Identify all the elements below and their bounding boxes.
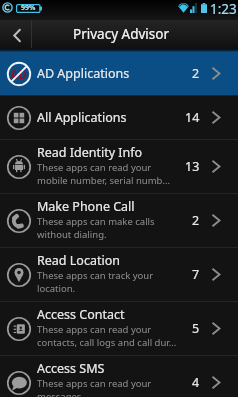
staticText: 2 xyxy=(192,212,200,229)
staticText: 4 xyxy=(192,374,200,391)
staticText: These apps can track your xyxy=(37,269,154,282)
button[interactable]: Access Contact xyxy=(0,302,238,355)
button[interactable]: Read Location xyxy=(0,248,238,301)
staticText: 5 xyxy=(192,320,200,337)
staticText: 1:23 xyxy=(210,0,237,18)
staticText: location. xyxy=(37,282,76,295)
staticText: Access SMS xyxy=(37,360,105,377)
staticText: All Applications xyxy=(37,109,127,126)
staticText: These apps can read your xyxy=(37,323,152,336)
staticText: These apps can read your xyxy=(37,377,152,390)
staticText: AD Applications xyxy=(37,65,130,82)
button[interactable]: Read Identity Info xyxy=(0,140,238,193)
button[interactable]: Back xyxy=(0,20,31,48)
staticText: Make Phone Call xyxy=(37,198,135,215)
staticText: AD xyxy=(10,66,28,82)
staticText: These apps can read your xyxy=(37,161,152,174)
button[interactable]: All Applications xyxy=(0,96,238,139)
staticText: 2 xyxy=(192,65,200,82)
staticText: without dialing. xyxy=(37,228,107,241)
staticText: messages. xyxy=(37,390,84,397)
button[interactable]: AD xyxy=(0,52,238,95)
staticText: 7 xyxy=(192,266,200,283)
staticText: mobile number, serial numb... xyxy=(37,174,171,187)
staticText: Read Identity Info xyxy=(37,144,143,161)
staticText: 99% xyxy=(21,3,36,13)
staticText: Read Location xyxy=(37,252,120,269)
button[interactable]: Access SMS xyxy=(0,356,238,397)
staticText: These apps can make calls xyxy=(37,215,155,228)
staticText: 13 xyxy=(185,158,200,175)
staticText: 14 xyxy=(185,109,200,126)
staticText: Access Contact xyxy=(37,306,125,323)
staticText: contacts, call logs and call dur... xyxy=(37,336,177,349)
staticText: Privacy Advisor xyxy=(73,25,170,43)
button[interactable]: Make Phone Call xyxy=(0,194,238,247)
